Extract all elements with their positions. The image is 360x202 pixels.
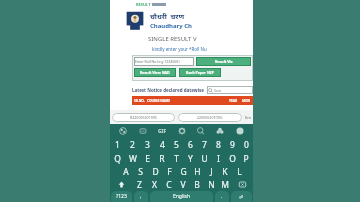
staticText: G — [180, 166, 187, 178]
staticText: Z — [137, 179, 142, 191]
staticText: W — [129, 153, 137, 165]
staticText: K — [222, 166, 228, 178]
staticText: D — [152, 166, 159, 178]
button[interactable]: 8 — [211, 138, 225, 152]
button[interactable]: J — [204, 165, 218, 178]
staticText: . — [221, 193, 223, 200]
staticText: चौधरी चरण — [150, 12, 185, 22]
staticText: T — [174, 153, 179, 165]
staticText: C — [166, 179, 172, 191]
button[interactable]: 5 — [169, 138, 183, 152]
staticText: 7 — [202, 139, 207, 151]
staticText: 8 — [216, 139, 221, 151]
button[interactable]: P — [239, 152, 253, 165]
staticText: 5 — [174, 139, 179, 151]
staticText: J — [210, 166, 213, 178]
staticText: Q — [114, 153, 121, 165]
button[interactable]: D — [148, 165, 162, 178]
button[interactable]: F — [162, 165, 176, 178]
staticText: GIF — [158, 128, 167, 135]
staticText: M — [221, 179, 229, 191]
staticText: V — [180, 179, 186, 191]
button[interactable]: T — [169, 152, 183, 165]
button[interactable]: ⏎ — [231, 191, 252, 202]
button[interactable]: U — [197, 152, 211, 165]
button[interactable]: Clipboard — [214, 125, 226, 137]
staticText: Result Vie — [215, 59, 233, 64]
staticText: R — [159, 153, 165, 165]
button[interactable]: H — [190, 165, 204, 178]
staticText: Y — [188, 153, 193, 165]
button[interactable]: N — [204, 178, 218, 191]
button[interactable]: Q — [110, 152, 125, 165]
button[interactable]: Settings — [176, 125, 188, 137]
staticText: B — [194, 179, 200, 191]
button[interactable]: 9 — [225, 138, 239, 152]
staticText: 0 — [244, 139, 249, 151]
button[interactable]: 1 — [110, 138, 125, 152]
button[interactable]: 0 — [239, 138, 253, 152]
button[interactable]: Translate — [195, 125, 207, 137]
button[interactable]: English — [150, 191, 213, 202]
staticText: N — [208, 179, 215, 191]
button[interactable]: 6 — [183, 138, 197, 152]
staticText: COURSE NAME — [147, 99, 170, 103]
button[interactable]: 22005630109% — [178, 113, 242, 122]
button[interactable]: Y — [183, 152, 197, 165]
staticText: Latest Notice declared datewise — [132, 87, 204, 93]
button[interactable]: O — [225, 152, 239, 165]
button[interactable]: G — [176, 165, 190, 178]
button[interactable]: 7 — [197, 138, 211, 152]
button[interactable]: Stickers — [137, 125, 149, 137]
button[interactable]: Z — [132, 178, 147, 191]
button[interactable]: C — [162, 178, 176, 191]
staticText: kindly enter your *Roll Nu — [152, 46, 207, 52]
button[interactable]: 4 — [155, 138, 169, 152]
staticText: English — [173, 193, 191, 200]
staticText: Sear — [214, 88, 222, 93]
button[interactable]: Google search — [117, 125, 129, 137]
staticText: Em — [245, 115, 251, 120]
staticText: YEAR — [229, 99, 238, 103]
button[interactable]: 2 — [125, 138, 140, 152]
button[interactable]: Back Paper NEP — [179, 68, 221, 77]
button[interactable]: S — [133, 165, 148, 178]
button[interactable]: R — [155, 152, 169, 165]
button[interactable]: B — [190, 178, 204, 191]
staticText: 22005630109% — [197, 115, 223, 120]
staticText: R220055301095 — [130, 115, 157, 120]
button[interactable]: Result View NAD — [134, 68, 176, 77]
staticText: I — [217, 153, 220, 165]
button[interactable]: V — [176, 178, 190, 191]
staticText: MON — [242, 99, 251, 103]
button[interactable]: M — [218, 178, 232, 191]
button[interactable]: , — [134, 191, 148, 202]
staticText: L — [237, 166, 242, 178]
button[interactable]: ?123 — [111, 191, 132, 202]
button[interactable]: I — [211, 152, 225, 165]
button[interactable]: Backspace — [232, 178, 253, 191]
staticText: E — [145, 153, 150, 165]
button[interactable]: Shift — [110, 178, 132, 191]
staticText: S — [138, 166, 143, 178]
staticText: SR.NO. — [134, 99, 145, 103]
staticText: RESULT — [136, 2, 151, 7]
button[interactable]: E — [140, 152, 155, 165]
button[interactable]: K — [218, 165, 232, 178]
staticText: Back Paper NEP — [186, 70, 215, 75]
staticText: 4 — [160, 139, 165, 151]
button[interactable]: . — [215, 191, 229, 202]
button[interactable]: A — [118, 165, 133, 178]
button[interactable]: W — [125, 152, 140, 165]
button[interactable]: 3 — [140, 138, 155, 152]
button[interactable]: GIF — [156, 125, 168, 137]
staticText: O — [229, 153, 236, 165]
staticText: A — [123, 166, 129, 178]
button[interactable]: Result Vie — [196, 57, 251, 66]
button[interactable]: X — [147, 178, 162, 191]
button[interactable]: Voice input — [234, 125, 246, 137]
button[interactable]: R220055301095 — [112, 113, 175, 122]
staticText: X — [152, 179, 157, 191]
button[interactable]: L — [232, 165, 246, 178]
staticText: 1 — [115, 139, 120, 151]
